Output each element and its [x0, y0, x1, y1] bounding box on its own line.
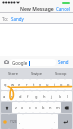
button[interactable]: y	[37, 79, 44, 90]
staticText: ,	[19, 119, 21, 124]
staticText: b	[42, 105, 45, 110]
staticText: d	[19, 94, 22, 99]
button[interactable]: Return	[58, 114, 72, 129]
button[interactable]: l	[64, 91, 72, 101]
button[interactable]: Shift	[1, 102, 12, 113]
button[interactable]: f	[24, 91, 32, 101]
button[interactable]: Send	[56, 56, 71, 68]
staticText: h	[43, 94, 46, 99]
staticText: v	[35, 105, 38, 110]
button[interactable]: Emoji	[1, 114, 9, 129]
staticText: To:	[2, 16, 9, 22]
staticText: Scoop	[55, 71, 67, 76]
staticText: l	[67, 94, 69, 99]
button[interactable]: ,	[17, 114, 23, 129]
button[interactable]: Swipe	[25, 68, 49, 79]
button[interactable]: Store	[0, 68, 25, 79]
button[interactable]: o	[58, 79, 65, 90]
staticText: t	[33, 82, 35, 87]
staticText: p	[67, 82, 70, 87]
staticText: q	[4, 82, 7, 87]
button[interactable]: Backspace	[61, 102, 72, 113]
staticText: w	[11, 82, 15, 87]
staticText: Swipe	[31, 71, 43, 76]
staticText: r	[26, 82, 28, 87]
staticText: u	[46, 82, 49, 87]
button[interactable]: Scoop	[49, 68, 73, 79]
staticText: .	[54, 119, 56, 124]
button[interactable]: t	[30, 79, 37, 90]
button[interactable]: r	[23, 79, 30, 90]
button[interactable]: z	[12, 102, 19, 113]
button[interactable]: s	[8, 91, 16, 101]
staticText: c	[29, 105, 31, 110]
button[interactable]: a	[1, 91, 8, 101]
button[interactable]: Google	[10, 59, 56, 66]
staticText: n	[49, 105, 52, 110]
staticText: New Message	[20, 6, 54, 13]
button[interactable]: p	[65, 79, 72, 90]
button[interactable]: g	[32, 91, 40, 101]
button[interactable]: k	[56, 91, 64, 101]
button[interactable]: h	[40, 91, 48, 101]
staticText: y	[39, 82, 42, 87]
staticText: ?123	[10, 120, 17, 124]
button[interactable]: b	[40, 102, 47, 113]
staticText: Store	[8, 71, 18, 76]
staticText: j	[51, 94, 53, 99]
staticText: g	[35, 94, 38, 99]
staticText: e	[18, 82, 21, 87]
staticText: Send	[58, 59, 69, 65]
button[interactable]: m	[54, 102, 61, 113]
button[interactable]: Camera	[2, 58, 10, 66]
button[interactable]: e	[16, 79, 23, 90]
button[interactable]: c	[26, 102, 33, 113]
staticText: i	[54, 82, 56, 87]
staticText: Sandy	[11, 16, 24, 22]
staticText: k	[59, 94, 62, 99]
staticText: o	[60, 82, 63, 87]
button[interactable]: u	[44, 79, 51, 90]
button[interactable]: v	[33, 102, 40, 113]
staticText: x	[21, 105, 24, 110]
staticText: z	[15, 105, 17, 110]
button[interactable]: n	[47, 102, 54, 113]
button[interactable]: q	[1, 79, 9, 90]
button[interactable]: .	[52, 114, 58, 129]
button[interactable]: w	[9, 79, 16, 90]
staticText: m	[56, 105, 60, 110]
button[interactable]: j	[48, 91, 56, 101]
button[interactable]: Cancel	[53, 5, 73, 13]
staticText: f	[27, 94, 29, 99]
button[interactable]: x	[19, 102, 26, 113]
staticText: Google	[12, 60, 28, 66]
staticText: s	[11, 94, 13, 99]
staticText: Cancel	[56, 6, 71, 12]
button[interactable]: d	[16, 91, 24, 101]
button[interactable]: Numbers	[9, 114, 17, 129]
button[interactable]: i	[51, 79, 58, 90]
staticText: a	[3, 94, 6, 99]
